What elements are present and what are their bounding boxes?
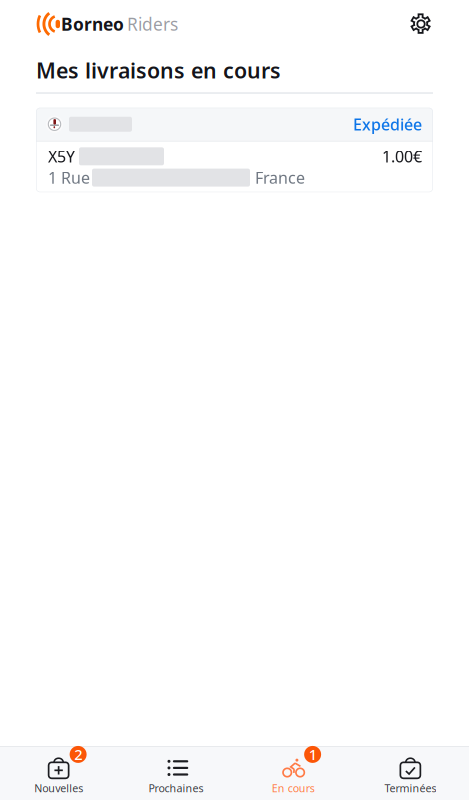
staticText: Terminées [384, 781, 436, 795]
button[interactable]: Settings [410, 13, 432, 35]
staticText: Borneo [61, 12, 124, 35]
staticText: 1 Rue [48, 167, 90, 188]
button[interactable]: 2 [0, 757, 117, 795]
staticText: Prochaines [148, 781, 203, 795]
staticText: Expédiée [353, 114, 422, 135]
staticText: Riders [127, 12, 178, 35]
staticText: France [255, 167, 305, 188]
button[interactable]: 1 [234, 757, 352, 795]
staticText: X5Y [48, 146, 75, 167]
staticText: Nouvelles [34, 781, 83, 795]
staticText: Mes livraisons en cours [36, 56, 281, 84]
staticText: 1 [309, 745, 317, 764]
button[interactable]: Prochaines [117, 757, 234, 795]
staticText: En cours [272, 781, 315, 795]
button[interactable]: Terminées [352, 757, 469, 795]
staticText: 2 [74, 745, 82, 764]
staticText: 1.00€ [382, 146, 422, 167]
